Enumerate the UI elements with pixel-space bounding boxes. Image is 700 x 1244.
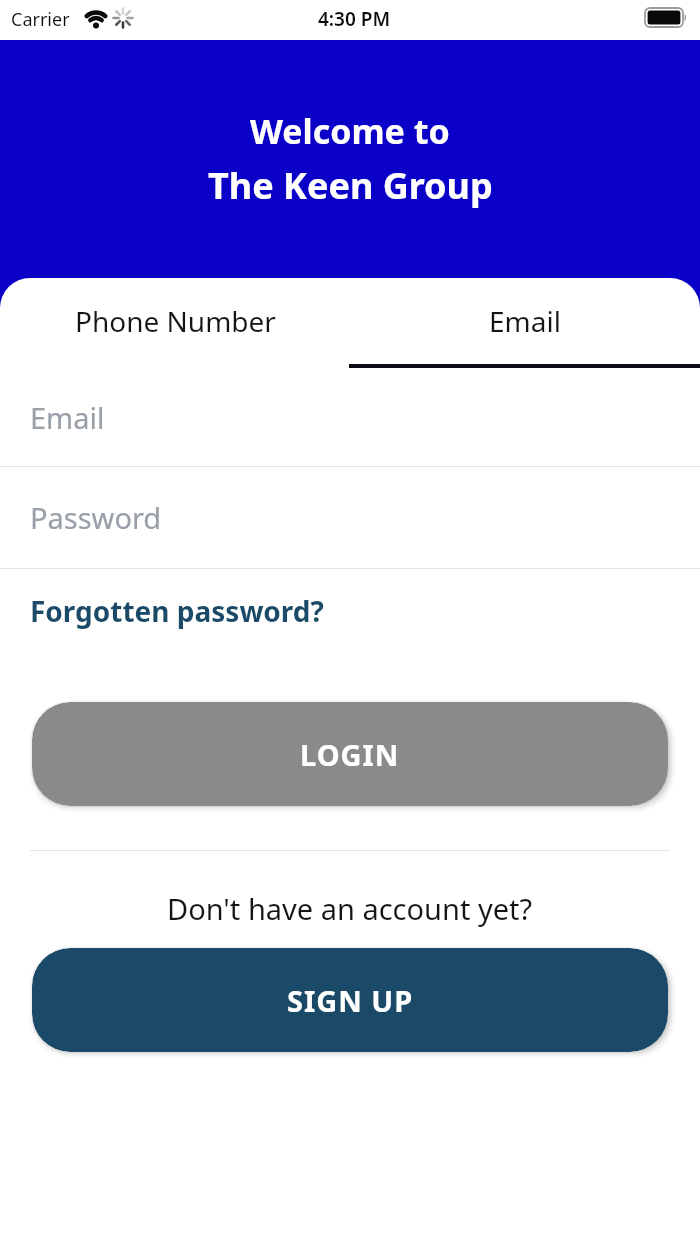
button[interactable]: SIGN UP [32, 948, 668, 1052]
button[interactable]: Email [0, 382, 700, 452]
staticText: Password [30, 498, 162, 537]
staticText: Don't have an account yet? [167, 889, 533, 928]
button[interactable]: LOGIN [32, 702, 668, 806]
staticText: Email [489, 302, 561, 340]
button[interactable]: Forgotten password? [0, 580, 360, 642]
button[interactable]: Email [350, 286, 700, 356]
staticText: 4:30 PM [318, 6, 391, 32]
staticText: Email [30, 398, 105, 437]
staticText: Welcome to [250, 108, 450, 154]
staticText: LOGIN [300, 735, 400, 774]
staticText: Forgotten password? [30, 592, 324, 630]
button[interactable]: Password [0, 467, 700, 568]
button[interactable]: Phone Number [0, 286, 350, 356]
staticText: The Keen Group [208, 161, 493, 210]
staticText: Carrier [11, 7, 70, 32]
staticText: SIGN UP [287, 981, 414, 1020]
staticText: Phone Number [75, 302, 276, 340]
